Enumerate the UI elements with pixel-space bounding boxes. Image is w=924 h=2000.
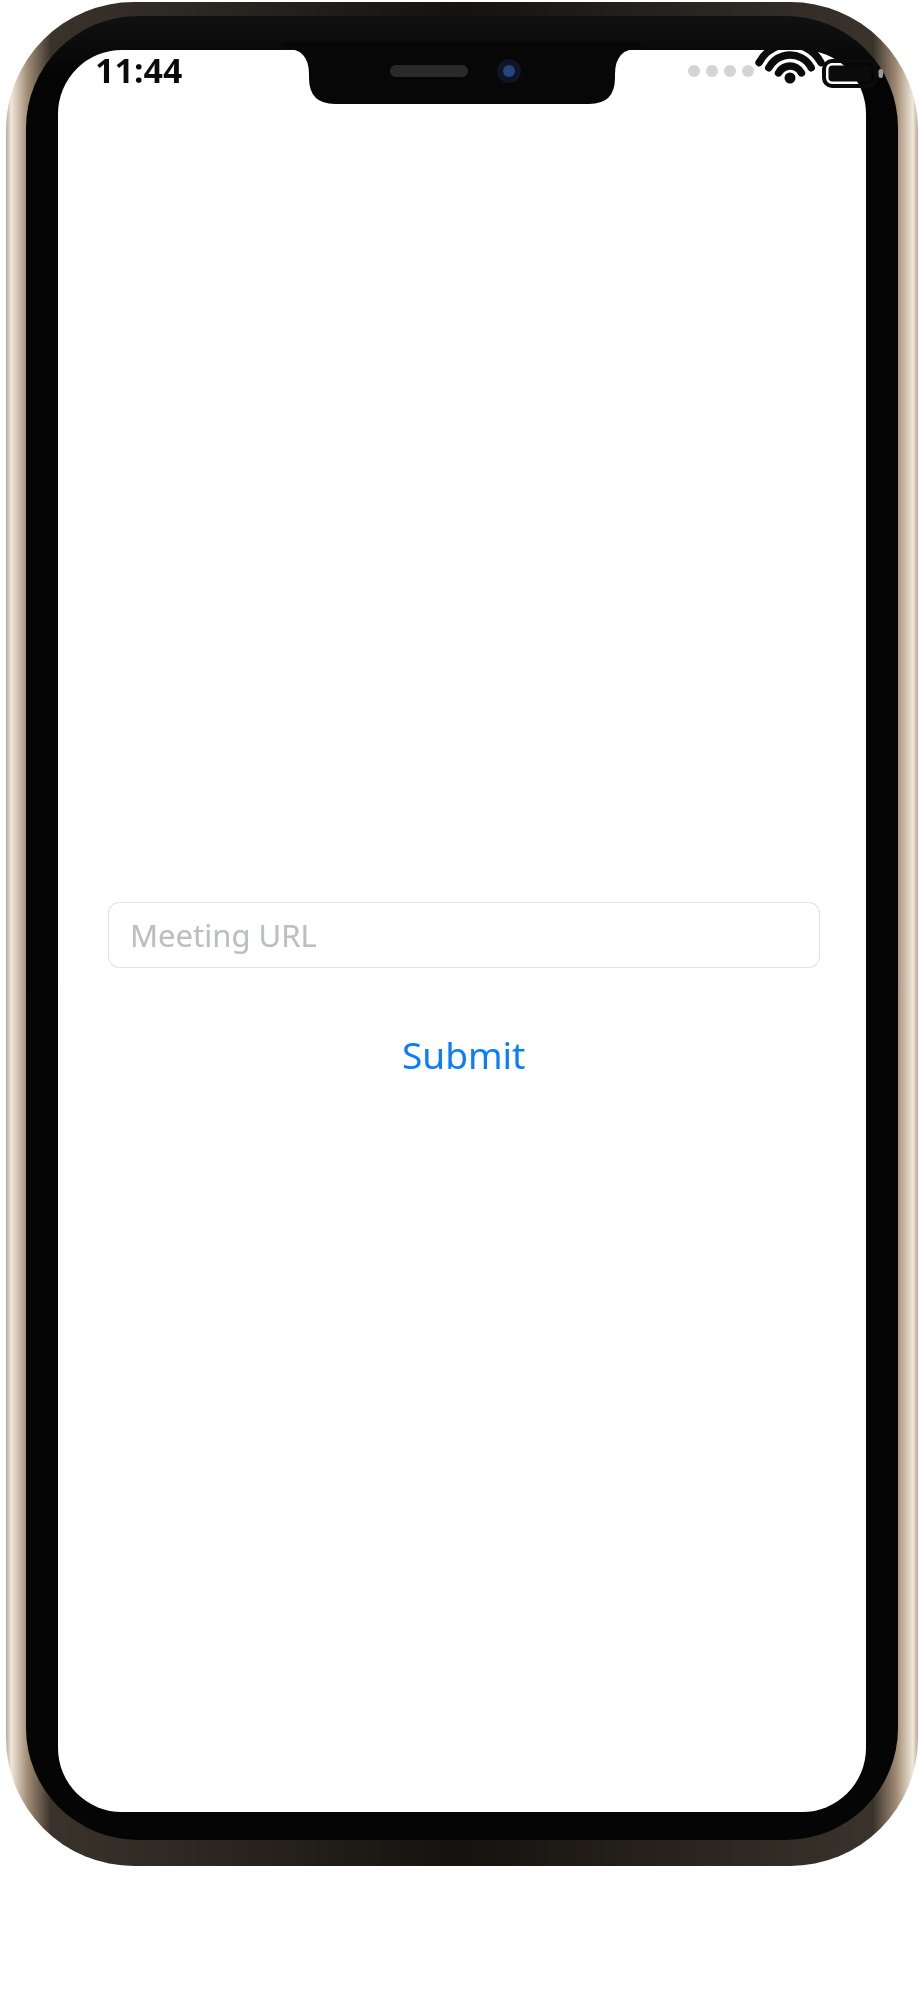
staticText: Meeting URL <box>130 914 317 956</box>
staticText: 11:44 <box>95 47 183 93</box>
staticText: Submit <box>402 1029 526 1079</box>
button[interactable]: Meeting URL <box>108 902 820 968</box>
button[interactable]: Submit <box>108 1012 820 1096</box>
